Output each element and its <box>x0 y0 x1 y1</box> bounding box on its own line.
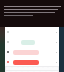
button[interactable] <box>5 28 59 36</box>
button[interactable] <box>5 48 59 56</box>
button[interactable] <box>5 58 59 66</box>
button[interactable] <box>5 38 59 46</box>
